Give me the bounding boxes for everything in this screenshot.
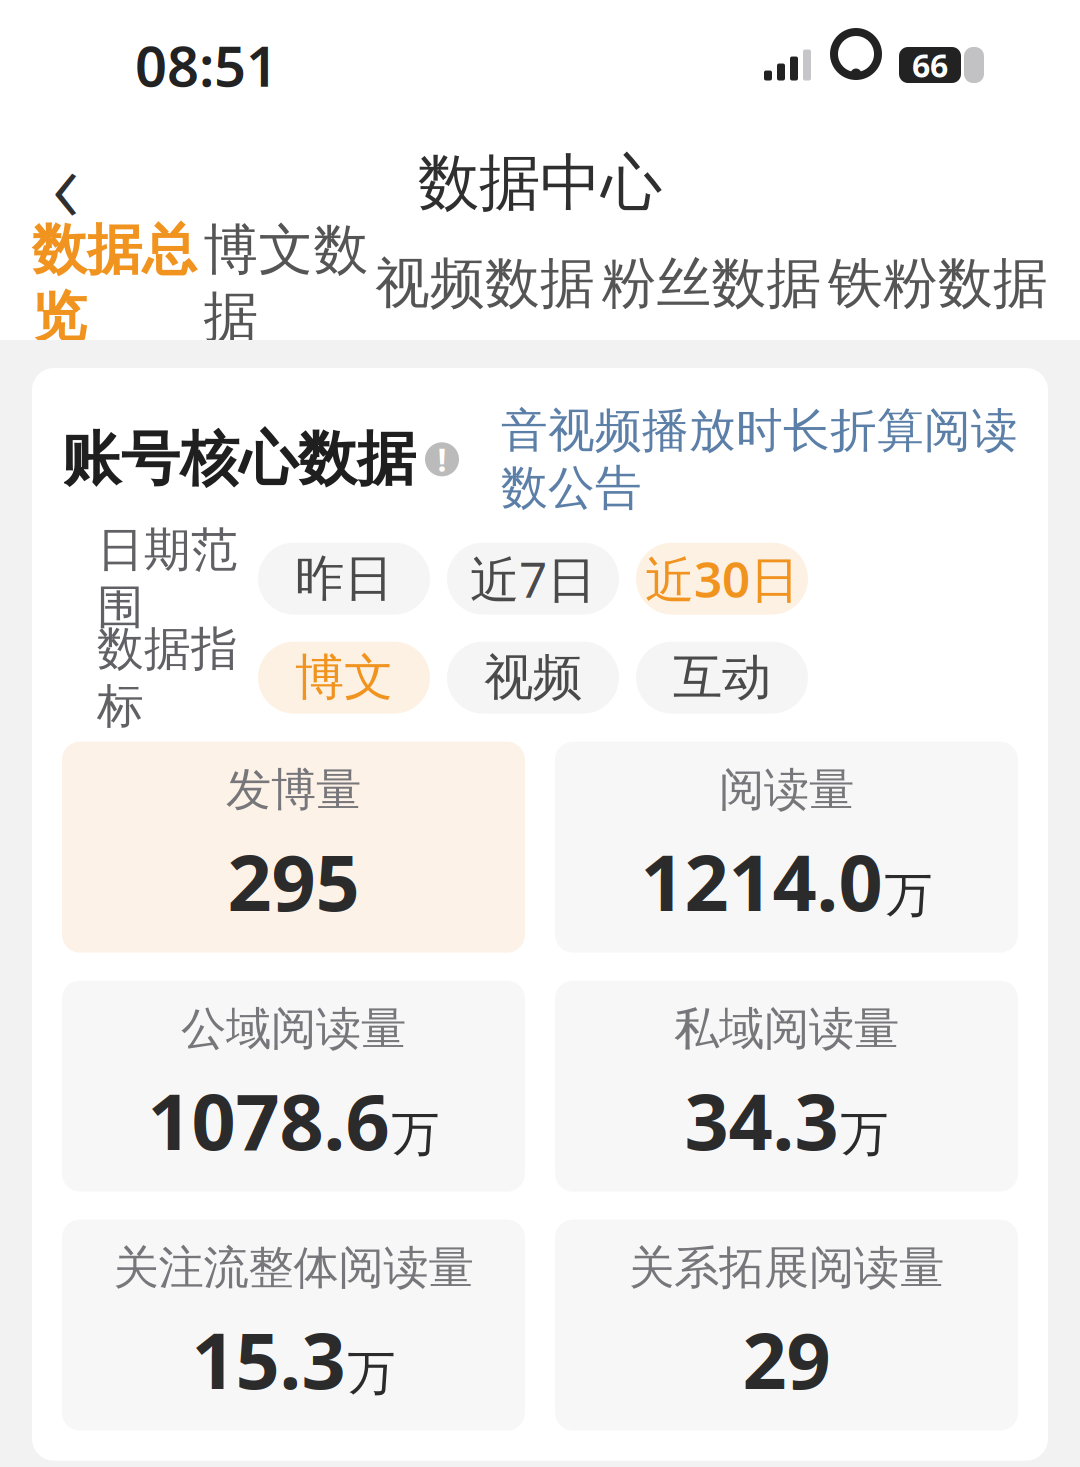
staticText: 万	[884, 865, 932, 924]
staticText: 近30日	[645, 546, 799, 611]
button[interactable]: 博文	[258, 642, 430, 714]
button[interactable]: 昨日	[258, 543, 430, 615]
button[interactable]: 近7日	[447, 543, 619, 615]
staticText: !	[437, 438, 446, 481]
button[interactable]: 粉丝数据	[601, 236, 821, 340]
button[interactable]: 铁粉数据	[828, 236, 1048, 340]
button[interactable]: 私域阅读量	[555, 981, 1018, 1192]
button[interactable]: 关注流整体阅读量	[62, 1220, 525, 1431]
staticText: 铁粉数据	[828, 250, 1048, 317]
button[interactable]: 数据总览	[32, 202, 197, 374]
button[interactable]: 关系拓展阅读量	[555, 1220, 1018, 1431]
staticText: 66	[912, 44, 948, 86]
staticText: 视频数据	[375, 250, 595, 317]
staticText: 昨日	[295, 548, 393, 609]
staticText: 295	[227, 830, 359, 932]
button[interactable]: 阅读量	[555, 742, 1018, 953]
staticText: 34.3	[684, 1069, 838, 1171]
staticText: 1078.6	[147, 1069, 389, 1171]
staticText: 日期范围	[97, 521, 238, 636]
staticText: 关注流整体阅读量	[113, 1240, 473, 1296]
button[interactable]: 音视频播放时长折算阅读数公告	[501, 402, 1018, 517]
staticText: 视频	[484, 647, 582, 708]
staticText: 公域阅读量	[181, 1001, 406, 1057]
staticText: 发博量	[226, 762, 361, 818]
button[interactable]: 公域阅读量	[62, 981, 525, 1192]
staticText: 博文	[295, 647, 393, 708]
button[interactable]: 发博量	[62, 742, 525, 953]
staticText: 数据指标	[97, 620, 238, 735]
button[interactable]: 互动	[636, 642, 808, 714]
staticText: 数据总览	[32, 216, 197, 351]
button[interactable]: 博文数据	[203, 202, 368, 374]
staticText: 阅读量	[719, 762, 854, 818]
staticText: 数据中心	[418, 145, 662, 221]
button[interactable]: 近30日	[636, 543, 808, 615]
staticText: 关系拓展阅读量	[629, 1240, 944, 1296]
staticText: ‹	[52, 114, 80, 252]
staticText: 近7日	[470, 546, 596, 611]
button[interactable]: 视频	[447, 642, 619, 714]
staticText: 万	[840, 1104, 888, 1163]
staticText: 万	[347, 1343, 395, 1402]
staticText: 08:51	[135, 28, 278, 102]
staticText: 音视频播放时长折算阅读数公告	[501, 402, 1018, 517]
button[interactable]: Back	[18, 135, 114, 231]
staticText: 1214.0	[640, 830, 882, 932]
button[interactable]: 说明	[416, 433, 468, 485]
staticText: 万	[391, 1104, 439, 1163]
button[interactable]: 视频数据	[375, 236, 595, 340]
staticText: 账号核心数据	[62, 423, 416, 495]
staticText: 粉丝数据	[601, 250, 821, 317]
staticText: 博文数据	[203, 216, 368, 351]
staticText: 15.3	[191, 1308, 345, 1410]
staticText: 互动	[673, 647, 771, 708]
staticText: 29	[742, 1308, 830, 1410]
staticText: 私域阅读量	[674, 1001, 899, 1057]
